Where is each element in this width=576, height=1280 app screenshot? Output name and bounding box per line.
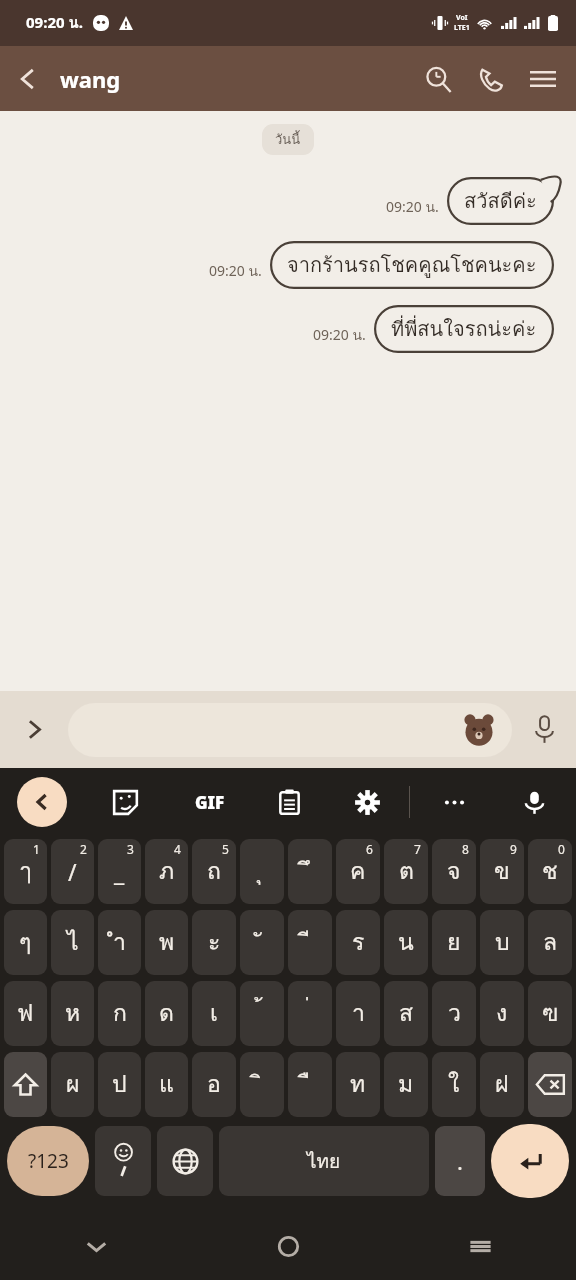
staticText: ผ [66,1066,80,1103]
button[interactable]: ส [384,981,428,1046]
staticText: ะ [208,924,221,961]
staticText: LTE1 [454,23,470,33]
staticText: _ [114,856,125,887]
button[interactable]: ฝ [480,1052,524,1117]
button[interactable]: า [336,981,380,1046]
button[interactable]: ฟ [4,981,47,1046]
button[interactable]: ร [336,910,380,975]
button[interactable]: เ [192,981,236,1046]
staticText: ส [399,995,414,1032]
button[interactable]: Sticker [103,780,147,824]
button[interactable]: ื [288,1052,332,1117]
button[interactable]: ป [98,1052,141,1117]
staticText: า [352,995,365,1032]
button[interactable]: ๆ [4,910,47,975]
button[interactable]: ท [336,1052,380,1117]
button[interactable]: ิ [240,1052,284,1117]
button[interactable]: ไ [51,910,94,975]
button[interactable]: ง [480,981,524,1046]
button[interactable]: บ [480,910,524,975]
button[interactable]: จ [432,839,476,904]
button[interactable]: Back [0,51,56,107]
button[interactable]: ั [240,910,284,975]
button[interactable]: ้ [240,981,284,1046]
button[interactable]: Call [464,53,516,105]
button[interactable]: ว [432,981,476,1046]
button[interactable]: ช [528,839,572,904]
staticText: ว [448,995,461,1032]
button[interactable]: Change language [157,1126,213,1196]
button[interactable]: ่ [288,981,332,1046]
button[interactable]: ต [384,839,428,904]
staticText: 09:20 น. [313,324,366,346]
button[interactable]: ำ [98,910,141,975]
staticText: 6 [366,841,373,857]
button[interactable]: ?123 [7,1126,89,1196]
staticText: / [68,856,77,887]
button[interactable]: Stickers [460,711,498,749]
button[interactable]: More options [0,691,68,768]
button[interactable]: . [435,1126,485,1196]
button[interactable]: ี [288,910,332,975]
staticText: จ [447,853,461,890]
button[interactable]: ไทย [219,1126,429,1196]
button[interactable]: Clipboard [267,780,311,824]
button[interactable]: Shift [4,1052,47,1117]
button[interactable]: ก [98,981,141,1046]
button[interactable]: ะ [192,910,236,975]
button[interactable]: Enter [491,1124,569,1198]
button[interactable]: GIF [187,779,233,825]
button[interactable]: Settings [345,780,389,824]
button[interactable]: ม [384,1052,428,1117]
staticText: 1 [33,841,40,857]
button[interactable]: ด [145,981,188,1046]
staticText: ถ [207,853,221,890]
button[interactable]: สวัสดีค่ะ [447,177,554,225]
button[interactable]: ที่พี่สนใจรถน่ะค่ะ [374,305,554,353]
button[interactable]: จากร้านรถโชคคูณโชคนะคะ [270,241,554,289]
staticText: น [398,924,414,961]
button[interactable]: Voice input [512,780,556,824]
button[interactable]: _ [98,839,141,904]
button[interactable]: Emoji [95,1126,151,1196]
button[interactable]: ๅ [4,839,47,904]
button[interactable]: Search [412,53,464,105]
button[interactable]: ห [51,981,94,1046]
staticText: ๅ [20,853,32,890]
button[interactable]: Home [192,1212,384,1280]
button[interactable]: Stickers [68,703,512,757]
staticText: 7 [414,841,421,857]
staticText: 09:20 น. [209,260,262,282]
staticText: 2 [80,841,87,857]
staticText: . [457,1146,463,1176]
button[interactable]: Collapse toolbar [17,777,67,827]
staticText: ำ [113,924,126,961]
button[interactable]: ภ [145,839,188,904]
staticText: wang [60,64,121,94]
button[interactable]: น [384,910,428,975]
button[interactable]: ฃ [528,981,572,1046]
button[interactable]: แ [145,1052,188,1117]
button[interactable]: Hide keyboard [0,1212,192,1280]
button[interactable]: ึ [288,839,332,904]
button[interactable]: พ [145,910,188,975]
staticText: GIF [195,791,225,814]
button[interactable]: ุ [240,839,284,904]
button[interactable]: Voice message [512,691,576,768]
button[interactable]: ถ [192,839,236,904]
button[interactable]: Backspace [528,1052,572,1117]
button[interactable]: ข [480,839,524,904]
staticText: ๆ [19,924,32,961]
button[interactable]: ล [528,910,572,975]
staticText: VoI [456,13,468,23]
button[interactable]: ย [432,910,476,975]
button[interactable]: Menu [516,52,570,106]
button[interactable]: ค [336,839,380,904]
button[interactable]: ผ [51,1052,94,1117]
staticText: 4 [174,841,181,857]
button[interactable]: ใ [432,1052,476,1117]
button[interactable]: / [51,839,94,904]
button[interactable]: อ [192,1052,236,1117]
button[interactable]: Recent apps [384,1212,576,1280]
button[interactable]: More [432,780,476,824]
